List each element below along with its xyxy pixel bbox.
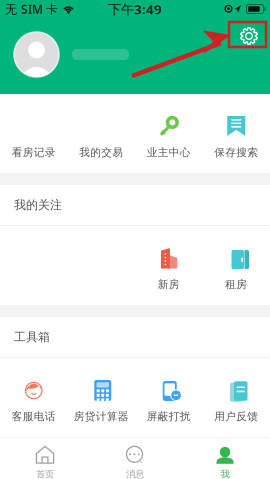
button[interactable]: 看房记录: [0, 94, 67, 173]
button[interactable]: 我的交易: [67, 94, 135, 173]
button[interactable]: 消息: [90, 445, 180, 477]
button[interactable]: 首页: [0, 445, 90, 477]
staticText: 租房: [225, 278, 247, 291]
button[interactable]: 租房: [202, 226, 270, 305]
staticText: 无 SIM 卡: [5, 1, 58, 17]
button[interactable]: 新房: [135, 226, 202, 305]
staticText: 消息: [126, 468, 144, 479]
staticText: 下午3:49: [108, 0, 162, 18]
staticText: 用户反馈: [214, 410, 258, 423]
staticText: 屏蔽打扰: [147, 410, 191, 423]
button[interactable]: 业主中心: [135, 94, 202, 173]
staticText: 首页: [36, 468, 54, 479]
staticText: 保存搜索: [214, 146, 258, 159]
button[interactable]: 房贷计算器: [67, 358, 135, 437]
button[interactable]: 客服电话: [0, 358, 67, 437]
staticText: 工具箱: [14, 330, 50, 344]
staticText: 我的交易: [79, 146, 123, 159]
staticText: 我的关注: [14, 198, 62, 212]
button[interactable]: 我: [180, 445, 270, 477]
staticText: 业主中心: [147, 146, 191, 159]
button[interactable]: 设置: [238, 25, 260, 47]
button[interactable]: 保存搜索: [202, 94, 270, 173]
staticText: 新房: [158, 278, 180, 291]
staticText: 房贷计算器: [74, 410, 129, 423]
staticText: 我: [220, 468, 229, 479]
staticText: 看房记录: [12, 146, 56, 159]
button[interactable]: 用户反馈: [202, 358, 270, 437]
staticText: 客服电话: [12, 410, 56, 423]
button[interactable]: 屏蔽打扰: [135, 358, 202, 437]
